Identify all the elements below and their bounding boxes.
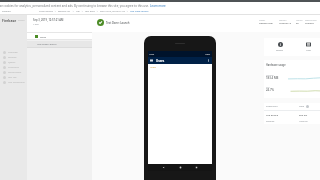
button[interactable]: Firebase [0, 15, 27, 25]
staticText: Settings [266, 120, 299, 123]
staticText: Test Lab [8, 76, 17, 79]
staticText: Details [276, 49, 284, 52]
staticText: 12:30 [149, 53, 155, 56]
staticText: Screenshot [266, 105, 299, 108]
button[interactable]: Back [162, 166, 165, 169]
staticText: Chinese [305, 22, 314, 25]
staticText: Hardware usage [266, 63, 286, 66]
staticText: Test Done: Launch [106, 21, 130, 25]
button[interactable]: App Crawl Launch [130, 10, 149, 13]
staticText: 890 ms [299, 113, 308, 116]
staticText: Quality [8, 61, 16, 64]
button[interactable]: App Distribution [0, 80, 27, 85]
staticText: Users [156, 59, 165, 63]
staticText: 1 test [33, 23, 39, 26]
button[interactable]: Learn more [150, 4, 166, 8]
staticText: MEMORY [266, 74, 274, 76]
button[interactable]: Develop [0, 55, 27, 60]
staticText: App Crawl Launch [37, 43, 57, 46]
button[interactable]: Overview [0, 50, 27, 55]
staticText: Android 10 [279, 22, 291, 25]
button[interactable]: Sep 3 2019, 00:53:21 AM [100, 10, 125, 13]
button[interactable]: The device [264, 111, 320, 118]
staticText: The device [266, 113, 299, 116]
staticText: > [80, 10, 85, 13]
staticText: Crashlytics [8, 66, 20, 69]
staticText: > [53, 10, 58, 13]
button[interactable]: Performance [0, 70, 27, 75]
staticText: project [18, 19, 25, 22]
button[interactable]: Crashlytics [0, 65, 27, 70]
staticText: Users [150, 66, 156, 69]
staticText: ORIENTATION [305, 19, 317, 21]
button[interactable]: Crash reports [39, 10, 53, 13]
staticText: Time [299, 105, 305, 108]
staticText: > [95, 10, 100, 13]
staticText: Firebase [2, 18, 17, 23]
staticText: We use cookies for analytics, personaliz… [0, 4, 149, 8]
button[interactable]: Reports API [58, 10, 71, 13]
button[interactable]: More options [207, 59, 210, 62]
staticText: Develop [8, 56, 17, 59]
staticText: en [296, 22, 299, 25]
staticText: > [125, 10, 130, 13]
staticText: Google Pixel [259, 22, 273, 25]
button[interactable]: Settings [264, 118, 320, 124]
button[interactable]: Recents [195, 166, 198, 169]
button[interactable]: Firebase [2, 10, 11, 13]
button[interactable]: Logs [296, 38, 320, 56]
button[interactable]: Open navigation menu [150, 59, 153, 62]
staticText: 1000 ms [299, 120, 308, 123]
staticText: LOCALE [296, 19, 303, 21]
staticText: > [71, 10, 76, 13]
staticText: CPU [266, 86, 270, 88]
button[interactable]: Test Lab [0, 75, 27, 80]
button[interactable]: Test Runs [85, 10, 95, 13]
staticText: 183.4 MB [266, 76, 279, 80]
button[interactable]: App Crawl Launch [27, 41, 92, 47]
button[interactable]: Lab [76, 10, 80, 13]
staticText: Tests [40, 35, 46, 38]
button[interactable]: Quality [0, 60, 27, 65]
staticText: MODEL [259, 19, 266, 21]
staticText: 100% [205, 53, 211, 56]
button[interactable]: Home [179, 166, 182, 169]
button[interactable]: Details [264, 38, 296, 56]
staticText: Logs [306, 49, 311, 52]
staticText: Overview [8, 51, 18, 54]
staticText: VERSION [279, 19, 287, 21]
staticText: App Distribution [8, 81, 25, 84]
staticText: 24.7% [266, 88, 274, 92]
staticText: Sep 3, 2019, 12:57:21 AM [33, 18, 64, 22]
staticText: Performance [8, 71, 22, 74]
